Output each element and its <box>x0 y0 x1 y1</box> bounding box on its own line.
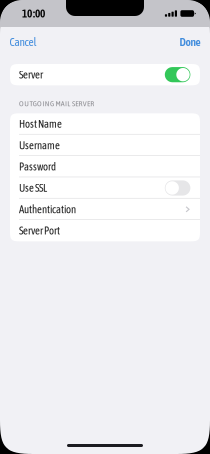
button[interactable]: Authentication <box>10 199 200 220</box>
button[interactable]: Host Name <box>10 113 200 135</box>
staticText: Username <box>19 139 60 151</box>
staticText: Cancel <box>9 35 36 48</box>
button[interactable]: Server <box>165 67 190 82</box>
button[interactable]: Use SSL <box>165 180 190 196</box>
staticText: Authentication <box>19 203 76 215</box>
staticText: Done <box>179 35 200 48</box>
staticText: Use SSL <box>19 182 47 194</box>
staticText: Password <box>19 160 56 173</box>
staticText: 10:00 <box>22 7 45 20</box>
staticText: Server Port <box>19 224 60 237</box>
staticText: Host Name <box>19 118 62 130</box>
button[interactable]: Username <box>10 135 200 156</box>
button[interactable]: Cancel <box>0 27 42 57</box>
staticText: Server <box>19 69 43 81</box>
button[interactable]: Password <box>10 156 200 177</box>
button[interactable]: Server Port <box>10 220 200 241</box>
button[interactable]: Done <box>173 27 210 57</box>
staticText: OUTGOING MAIL SERVER <box>19 99 94 108</box>
